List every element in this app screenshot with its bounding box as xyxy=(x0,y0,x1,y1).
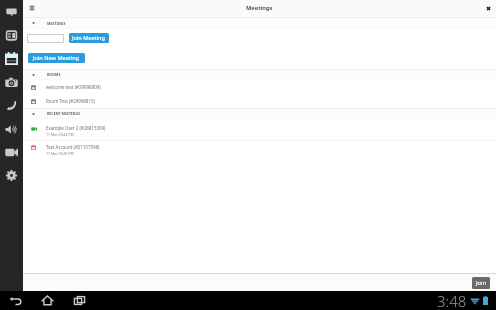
button[interactable]: VIDEO xyxy=(5,146,18,159)
button[interactable]: Example User 2 (#28815309) xyxy=(23,122,496,141)
button[interactable]: MEETINGS xyxy=(23,17,496,29)
staticText: Join Meeting xyxy=(72,34,106,42)
button[interactable]: welcome test (#29998809) xyxy=(23,81,496,95)
staticText: Join xyxy=(476,279,487,287)
staticText: RECENT MEETINGS xyxy=(47,111,81,116)
button[interactable]: Join New Meeting xyxy=(28,53,85,63)
staticText: ROOMS xyxy=(47,72,61,77)
button[interactable]: CAMERA xyxy=(5,76,18,89)
button[interactable]: Back xyxy=(8,293,23,308)
button[interactable]: Close xyxy=(483,3,494,14)
button[interactable]: Menu xyxy=(26,2,38,14)
staticText: Test Account (#21107598) xyxy=(46,144,100,150)
button[interactable]: ROOMS xyxy=(23,69,496,80)
button[interactable]: Join xyxy=(472,277,490,289)
staticText: welcome test (#29998809) xyxy=(46,84,101,90)
button[interactable]: SPEAKER xyxy=(5,123,18,136)
staticText: Meetings xyxy=(246,4,273,12)
staticText: MEETINGS xyxy=(47,21,66,26)
staticText: 11 Mar 03:44 PM xyxy=(46,132,74,137)
button[interactable]: CHAT xyxy=(5,6,18,19)
button[interactable]: Room Test (#29998810) xyxy=(23,95,496,109)
staticText: 11 Mar 03:28 PM xyxy=(46,151,74,156)
button[interactable]: WINDOW xyxy=(5,29,18,42)
staticText: Room Test (#29998810) xyxy=(46,98,95,104)
button[interactable]: RECENT MEETINGS xyxy=(23,108,496,119)
button[interactable]: Join Meeting xyxy=(69,33,109,43)
staticText: 3:48 xyxy=(437,291,467,310)
button[interactable]: Recent apps xyxy=(72,293,87,308)
button[interactable]: Meeting ID field xyxy=(27,34,64,43)
button[interactable]: Test Account (#21107598) xyxy=(23,141,496,160)
button[interactable]: GEAR xyxy=(5,169,18,182)
button[interactable]: Home xyxy=(40,293,55,308)
staticText: Example User 2 (#28815309) xyxy=(46,125,106,131)
staticText: Join New Meeting xyxy=(33,54,80,62)
button[interactable]: PHONE xyxy=(5,99,18,112)
button[interactable]: CAL xyxy=(5,52,18,65)
